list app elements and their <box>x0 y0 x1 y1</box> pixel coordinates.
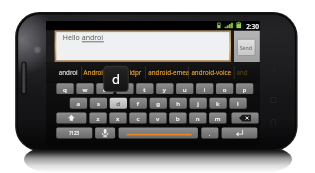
button[interactable]: Android phone showing on-screen keyboard <box>0 0 315 173</box>
